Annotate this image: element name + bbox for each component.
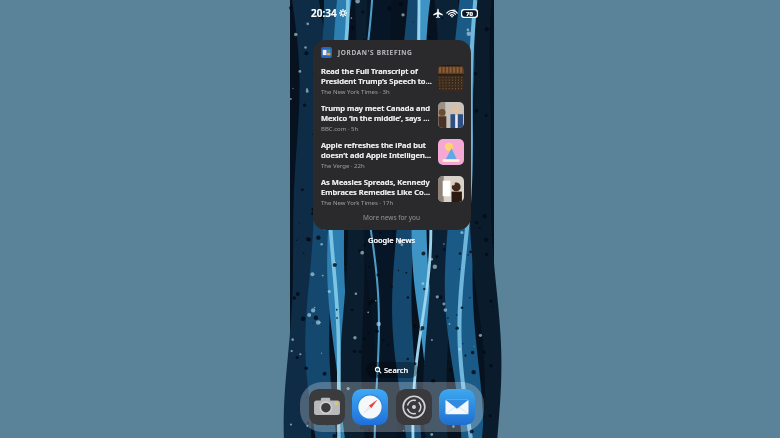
button[interactable]: Trump may meet Canada and Mexico ‘in the… [313, 99, 471, 136]
button[interactable]: Search [366, 362, 418, 378]
staticText: As Measles Spreads, Kennedy Embraces Rem… [321, 177, 432, 197]
staticText: 20:34 [311, 6, 337, 20]
staticText: Search [384, 365, 409, 375]
button[interactable]: Safari [352, 389, 388, 425]
staticText: 70 [466, 10, 473, 18]
staticText: Google News [368, 235, 416, 245]
staticText: JORDAN'S BRIEFING [338, 48, 413, 57]
button[interactable]: Apple refreshes the iPad but doesn’t add… [313, 136, 471, 173]
button[interactable]: Read the Full Transcript of President Tr… [313, 62, 471, 99]
staticText: More news for you [363, 213, 421, 222]
staticText: BBC.com · 5h [321, 125, 359, 133]
staticText: Apple refreshes the iPad but doesn’t add… [321, 140, 432, 160]
button[interactable]: Settings [396, 389, 432, 425]
staticText: The Verge · 22h [321, 162, 365, 170]
staticText: The New York Times · 3h [321, 88, 390, 96]
staticText: The New York Times · 17h [321, 199, 394, 207]
button[interactable]: Camera [309, 389, 345, 425]
staticText: Read the Full Transcript of President Tr… [321, 66, 432, 86]
button[interactable]: JORDAN'S BRIEFING [313, 47, 471, 62]
button[interactable]: As Measles Spreads, Kennedy Embraces Rem… [313, 173, 471, 210]
button[interactable]: Mail [439, 389, 475, 425]
staticText: Trump may meet Canada and Mexico ‘in the… [321, 103, 432, 123]
button[interactable]: JORDAN'S BRIEFING [313, 40, 471, 230]
